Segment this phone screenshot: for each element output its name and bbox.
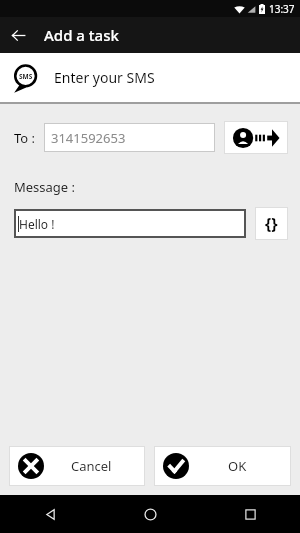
staticText: Enter your SMS (54, 68, 155, 87)
button[interactable]: Insert variable (255, 207, 288, 240)
staticText: 13:37 (269, 2, 295, 16)
button[interactable]: Hello ! (14, 209, 246, 238)
button[interactable]: Back (0, 495, 100, 533)
button[interactable]: Home (100, 495, 200, 533)
staticText: To : (14, 129, 36, 147)
staticText: Add a task (44, 25, 119, 45)
staticText: 3141592653 (51, 129, 126, 147)
button[interactable]: Recent apps (200, 495, 300, 533)
button[interactable]: Back (0, 17, 36, 53)
button[interactable]: Pick contact (224, 121, 288, 154)
button[interactable]: Cancel (9, 446, 145, 486)
staticText: SMS (19, 72, 33, 81)
staticText: Hello ! (19, 216, 55, 232)
staticText: Message : (14, 178, 76, 196)
button[interactable]: OK (154, 446, 291, 486)
button[interactable]: 3141592653 (44, 123, 215, 152)
staticText: OK (228, 457, 247, 475)
staticText: {} (265, 213, 278, 235)
staticText: Cancel (71, 457, 112, 475)
